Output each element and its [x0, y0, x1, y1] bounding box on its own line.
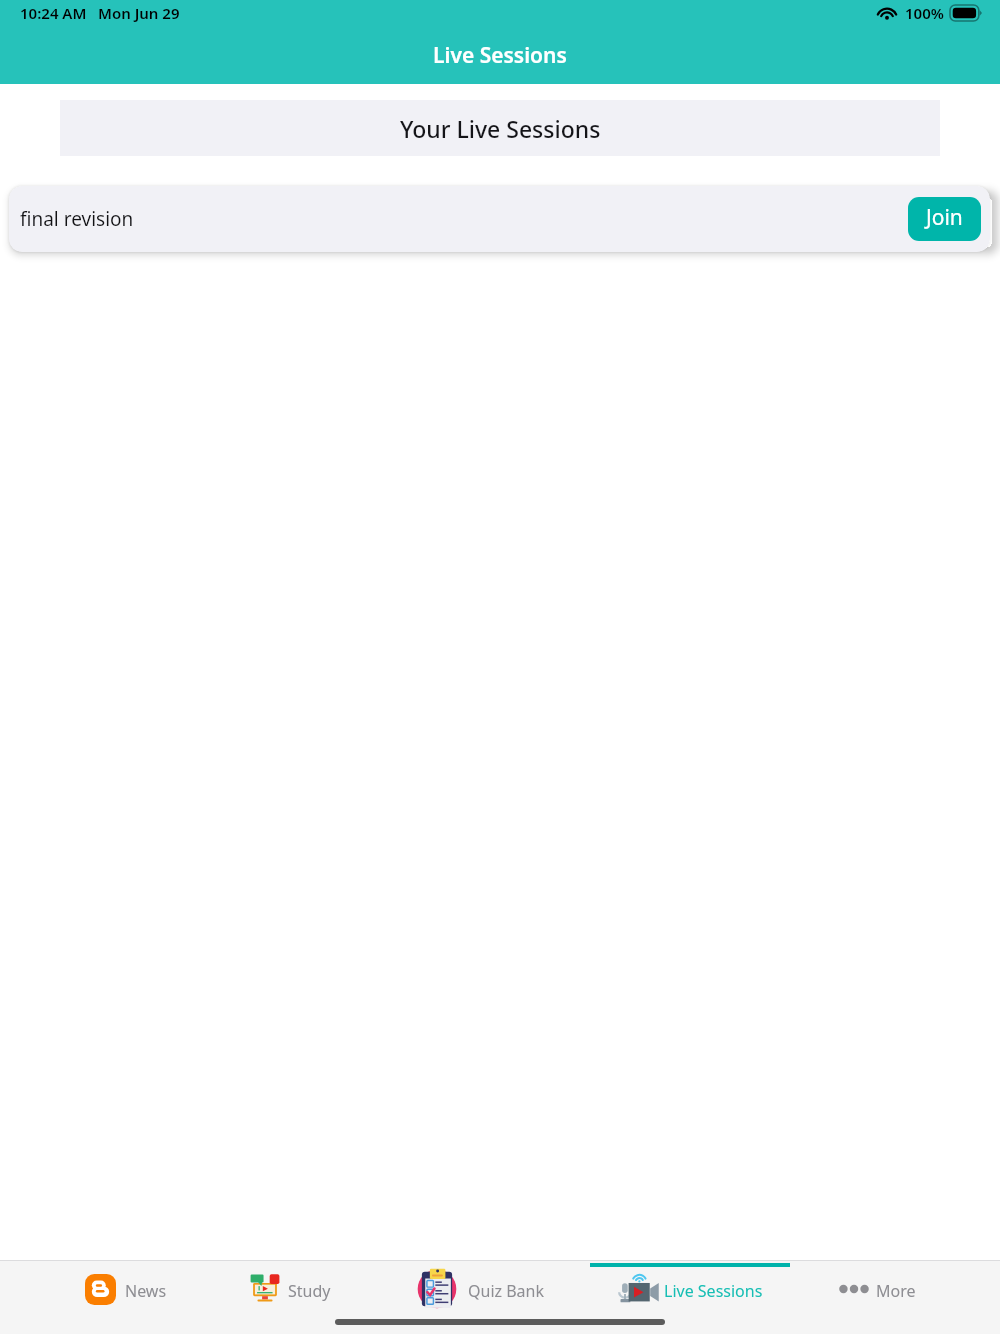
staticText: final revision — [20, 206, 134, 232]
staticText: More — [876, 1280, 916, 1302]
button[interactable]: Join — [908, 197, 981, 241]
button[interactable]: Quiz Bank — [394, 1262, 567, 1320]
staticText: Your Live Sessions — [400, 113, 601, 144]
staticText: 100% — [905, 3, 944, 23]
staticText: Mon Jun 29 — [98, 3, 180, 23]
button[interactable]: More — [816, 1262, 938, 1320]
staticText: News — [125, 1280, 167, 1302]
staticText: Join — [926, 203, 963, 232]
button[interactable]: News — [63, 1262, 189, 1320]
button[interactable]: Study — [225, 1262, 353, 1320]
button[interactable]: Live Sessions — [594, 1262, 785, 1320]
staticText: Study — [288, 1280, 331, 1302]
staticText: Live Sessions — [433, 41, 567, 70]
staticText: Quiz Bank — [468, 1280, 545, 1302]
staticText: Live Sessions — [664, 1280, 763, 1302]
staticText: 10:24 AM — [20, 3, 87, 23]
button[interactable]: final revision — [9, 186, 990, 252]
